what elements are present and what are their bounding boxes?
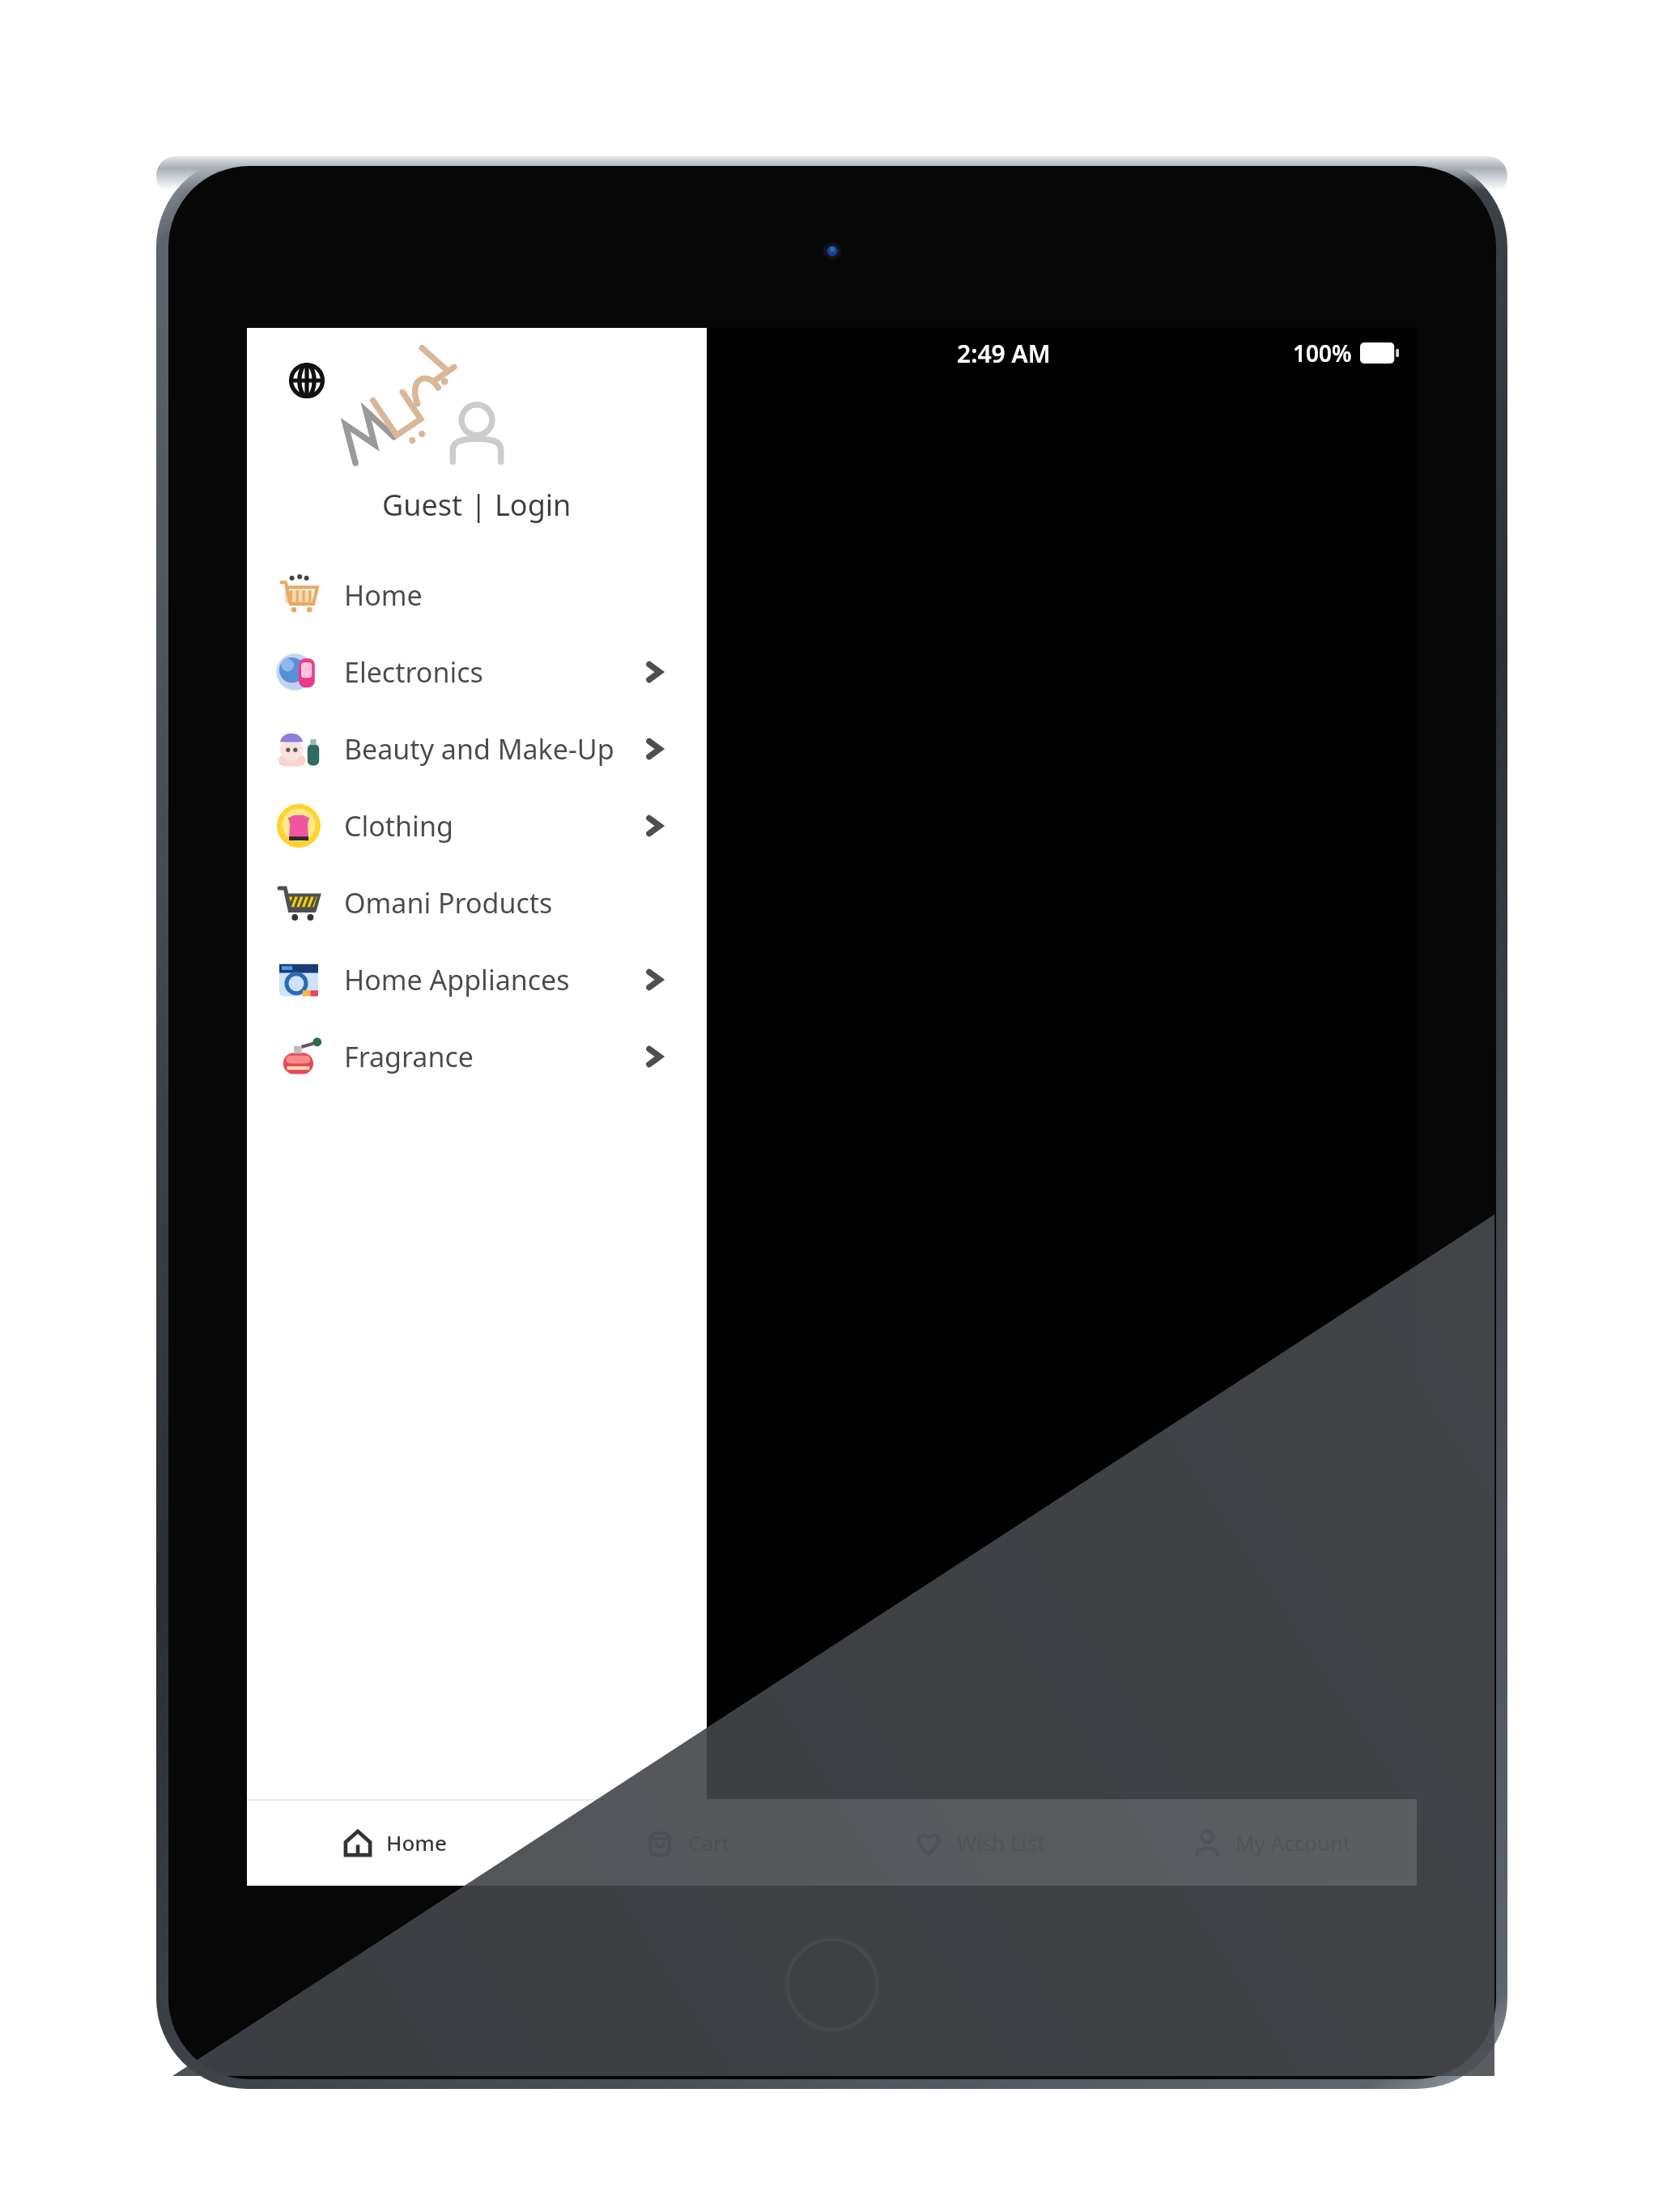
staticText: Clothing <box>344 807 453 844</box>
button[interactable]: My Account <box>1124 1799 1417 1886</box>
button[interactable]: Electronics <box>247 634 707 710</box>
button[interactable]: Home Appliances <box>247 942 707 1018</box>
button[interactable]: Home <box>247 557 707 633</box>
staticText: 100% <box>1293 338 1352 368</box>
staticText: | <box>463 485 495 525</box>
staticText: 2:49 AM <box>957 337 1051 370</box>
staticText: Omani Products <box>344 884 553 921</box>
button[interactable]: Clothing <box>247 788 707 864</box>
staticText: Login <box>495 485 572 525</box>
button[interactable]: Fragrance <box>247 1019 707 1095</box>
button[interactable]: Guest <box>382 485 572 525</box>
button[interactable]: Cart <box>540 1799 832 1886</box>
button[interactable]: Home <box>247 1799 540 1886</box>
staticText: Guest <box>382 485 463 525</box>
button[interactable]: Beauty and Make-Up <box>247 711 707 787</box>
staticText: Beauty and Make-Up <box>344 730 614 768</box>
staticText: Home <box>386 1828 447 1857</box>
button[interactable]: Brand logo <box>328 346 474 467</box>
button[interactable]: Omani Products <box>247 865 707 941</box>
staticText: My Account <box>1235 1828 1351 1857</box>
staticText: Fragrance <box>344 1038 474 1075</box>
staticText: Home Appliances <box>344 961 570 998</box>
staticText: Electronics <box>344 653 483 691</box>
staticText: Home <box>344 576 423 614</box>
button[interactable]: Change language <box>281 355 333 406</box>
